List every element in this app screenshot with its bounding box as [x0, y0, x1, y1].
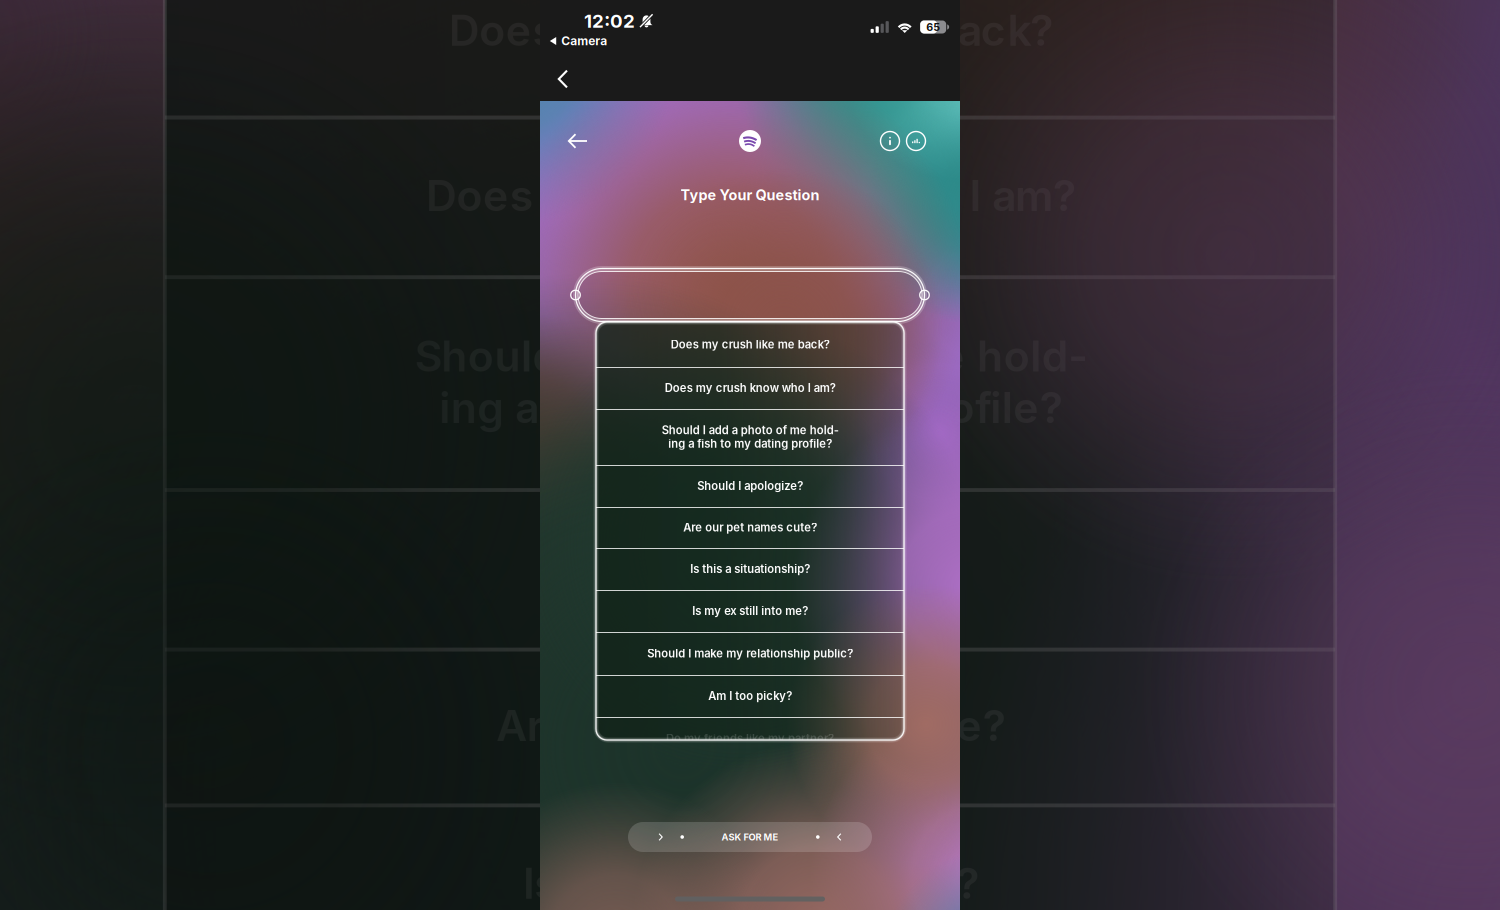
staticText: Camera	[561, 34, 607, 48]
staticText: Do my friends like my partner?	[666, 732, 834, 745]
button[interactable]: Is my ex still into me?	[596, 590, 904, 632]
staticText: 65	[926, 20, 940, 33]
button[interactable]: Does my crush know who I am?	[596, 367, 904, 409]
staticText: Does my crush know who I am?	[664, 381, 835, 395]
staticText: Am I too picky?	[708, 826, 792, 839]
staticText: Should I apologize?	[697, 616, 803, 629]
staticText: Am I too picky?	[708, 689, 792, 703]
staticText: ASK FOR ME	[721, 831, 778, 843]
staticText: Is this a situationship?	[690, 699, 810, 712]
staticText: Is this a situationship?	[690, 562, 810, 576]
button[interactable]: Should I apologize?	[596, 465, 904, 507]
button[interactable]: More options	[902, 127, 930, 155]
button[interactable]: Is this a situationship?	[596, 548, 904, 590]
staticText: 12:02	[584, 10, 635, 32]
button[interactable]: Should I add a photo of me hold- ing a f…	[596, 409, 904, 465]
button[interactable]: Should I make my relationship public?	[596, 632, 904, 675]
staticText: Type Your Question	[680, 186, 819, 204]
staticText: Should I add a photo of me hold- ing a f…	[661, 560, 838, 587]
staticText: Should I apologize?	[697, 479, 803, 493]
button[interactable]: Does my crush like me back?	[596, 322, 904, 367]
button[interactable]: Back	[546, 62, 580, 96]
staticText: Should I make my relationship public?	[647, 647, 853, 660]
button[interactable]: Info	[876, 127, 904, 155]
staticText: Should I make my relationship public?	[647, 783, 853, 797]
button[interactable]: Am I too picky?	[596, 675, 904, 717]
staticText: Is my ex still into me?	[692, 604, 808, 618]
button[interactable]: Back	[561, 126, 595, 156]
staticText: Does my crush like me back?	[670, 474, 829, 488]
button[interactable]: ASK FOR ME	[628, 822, 872, 852]
button[interactable]: Camera	[550, 34, 607, 48]
staticText: Does my crush know who I am?	[664, 518, 835, 531]
button[interactable]: Question text field	[570, 265, 930, 325]
staticText: Are our pet names cute?	[683, 657, 817, 671]
staticText: Does my crush like me back?	[670, 338, 829, 351]
staticText: Should I add a photo of me hold- ing a f…	[661, 423, 838, 450]
staticText: Is my ex still into me?	[692, 741, 808, 754]
button[interactable]: Are our pet names cute?	[596, 507, 904, 548]
staticText: Are our pet names cute?	[683, 521, 817, 534]
